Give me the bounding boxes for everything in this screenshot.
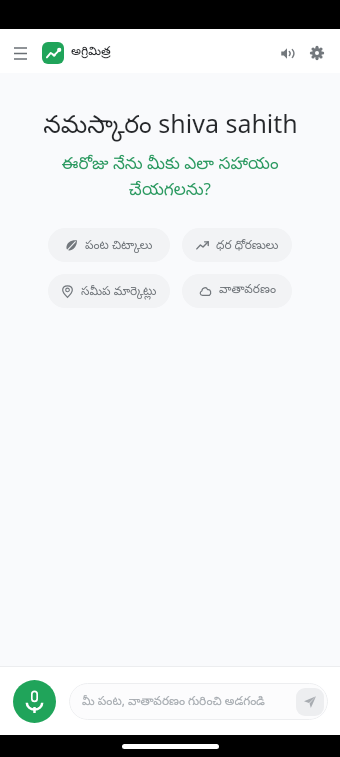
button[interactable]: ధర ధోరణులు <box>182 228 292 262</box>
staticText: అగ్రిమిత్ర <box>71 45 111 61</box>
staticText: నమస్కారం shiva sahith <box>43 106 298 145</box>
staticText: వాతావరణం <box>219 283 276 299</box>
staticText: సమీప మార్కెట్లు <box>81 282 157 301</box>
button[interactable]: వాతావరణం <box>182 274 292 308</box>
button[interactable]: Sound <box>272 38 302 68</box>
button[interactable]: Send <box>296 688 324 716</box>
staticText: మీ పంట, వాతావరణం గురించి అడగండి <box>82 692 266 711</box>
button[interactable]: Menu <box>4 37 36 69</box>
button[interactable]: సమీప మార్కెట్లు <box>48 274 170 308</box>
staticText: పంట చిట్కాలు <box>85 236 153 255</box>
staticText: ఈరోజు నేను మీకు ఎలా సహాయం చేయగలను? <box>55 151 285 203</box>
staticText: ధర ధోరణులు <box>216 236 279 255</box>
button[interactable]: Voice input <box>13 680 56 723</box>
button[interactable]: Settings <box>302 38 332 68</box>
button[interactable]: పంట చిట్కాలు <box>48 228 170 262</box>
